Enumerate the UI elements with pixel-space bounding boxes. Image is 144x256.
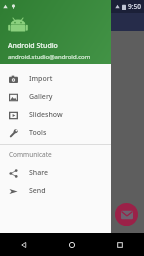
staticText: android.studio@android.com xyxy=(8,53,91,61)
staticText: Gallery xyxy=(29,92,53,102)
button[interactable]: Tools xyxy=(0,124,111,142)
staticText: Send xyxy=(29,186,46,196)
staticText: SETTINGS xyxy=(8,17,41,27)
staticText: Tools xyxy=(29,128,47,138)
button[interactable]: Recent apps xyxy=(96,233,144,256)
button[interactable]: Compose email xyxy=(115,203,138,226)
button[interactable]: Send xyxy=(0,182,111,200)
button[interactable]: Gallery xyxy=(0,88,111,106)
staticText: Import xyxy=(29,74,53,84)
staticText: Communicate xyxy=(9,150,52,159)
staticText: Slideshow xyxy=(29,110,63,120)
staticText: Share xyxy=(29,168,49,178)
button[interactable]: Back xyxy=(0,233,48,256)
button[interactable]: Android Studio xyxy=(0,0,111,64)
staticText: Android Studio xyxy=(8,41,58,51)
button[interactable]: Share xyxy=(0,164,111,182)
button[interactable]: Home xyxy=(48,233,96,256)
staticText: 9:50 xyxy=(128,2,141,11)
button[interactable]: Slideshow xyxy=(0,106,111,124)
button[interactable]: Import xyxy=(0,70,111,88)
